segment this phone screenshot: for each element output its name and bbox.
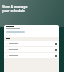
- button[interactable]: [6, 31, 25, 33]
- staticText: View & manage: [2, 4, 28, 8]
- button[interactable]: [4, 41, 59, 46]
- button[interactable]: [4, 47, 59, 52]
- button[interactable]: [4, 53, 59, 58]
- staticText: your schedule: [2, 8, 26, 12]
